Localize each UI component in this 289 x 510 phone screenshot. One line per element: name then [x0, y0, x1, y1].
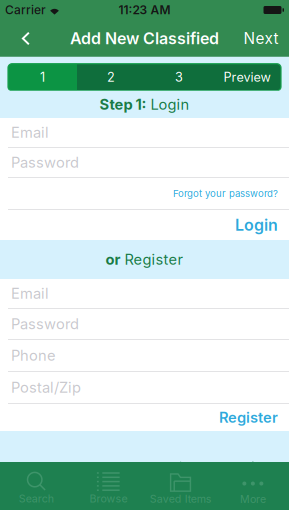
button[interactable]: Search [0, 462, 72, 510]
staticText: Email [11, 124, 49, 141]
staticText: Add New Classified [70, 29, 219, 48]
staticText: Search [19, 492, 54, 505]
staticText: More [240, 492, 266, 505]
staticText: or [105, 251, 120, 268]
button[interactable]: Next [246, 20, 276, 57]
staticText: Phone [11, 347, 56, 364]
staticText: Login [235, 215, 278, 235]
button[interactable]: 1 [8, 64, 77, 91]
button[interactable]: Register [0, 404, 289, 431]
staticText: Register [124, 251, 183, 268]
staticText: Forgot your password? [173, 188, 278, 199]
staticText: 2 [107, 70, 115, 85]
staticText: Saved Items [150, 492, 212, 505]
staticText: Postal/Zip [11, 379, 81, 396]
staticText: Password [11, 154, 79, 171]
staticText: Next [243, 29, 278, 48]
staticText: Preview [223, 70, 270, 85]
button[interactable]: Preview [213, 64, 281, 91]
staticText: Email [11, 285, 49, 302]
button[interactable]: 2 [77, 64, 145, 91]
button[interactable]: Login [0, 210, 289, 240]
staticText: Register [219, 409, 278, 426]
staticText: Password [11, 315, 79, 333]
button[interactable]: 3 [145, 64, 213, 91]
button[interactable]: Saved Items [144, 462, 217, 510]
staticText: Carrier [5, 3, 46, 17]
button[interactable]: Forgot your password? [0, 178, 289, 209]
staticText: 1 [40, 70, 45, 85]
staticText: Step 1: [99, 96, 146, 113]
staticText: 3 [175, 70, 183, 85]
staticText: Browse [89, 492, 127, 505]
button[interactable]: Browse [72, 462, 144, 510]
button[interactable]: More [217, 462, 289, 510]
staticText: Login [150, 96, 189, 113]
button[interactable]: Back [13, 20, 39, 57]
staticText: 11:23 AM [118, 3, 170, 17]
